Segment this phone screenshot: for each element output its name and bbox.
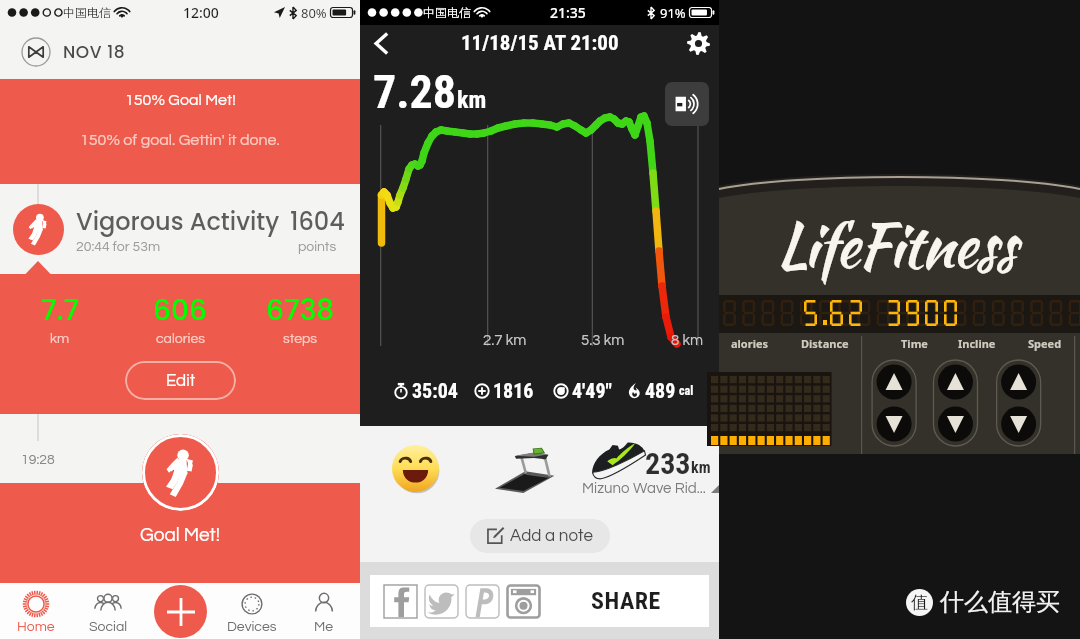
staticText: 8 km	[671, 333, 703, 348]
button[interactable]: Mood	[360, 426, 471, 510]
staticText: km	[691, 458, 711, 477]
staticText: Distance	[801, 336, 849, 351]
staticText: Home	[17, 620, 55, 634]
button[interactable]: Twitter	[424, 584, 459, 619]
button[interactable]: 233	[581, 426, 719, 510]
staticText: Mizuno Wave Rid...	[582, 481, 706, 496]
staticText: 1604	[290, 205, 345, 239]
button[interactable]: Audio cues	[665, 82, 709, 126]
staticText: 20:44 for 53m	[76, 240, 161, 254]
staticText: points	[298, 240, 337, 254]
staticText: SHARE	[591, 587, 661, 615]
button[interactable]: Home	[0, 583, 72, 639]
staticText: 中国电信	[423, 5, 471, 20]
staticText: km	[50, 332, 70, 346]
staticText: 35:04	[412, 379, 458, 402]
staticText: 中国电信	[63, 5, 111, 20]
staticText: 606	[153, 291, 207, 330]
staticText: Goal Met!	[140, 525, 220, 545]
staticText: Speed	[1028, 336, 1062, 351]
staticText: Social	[89, 620, 128, 634]
button[interactable]: Edit	[125, 361, 236, 400]
staticText: 21:35	[550, 3, 586, 22]
staticText: Vigorous Activity	[76, 205, 280, 239]
staticText: 150% Goal Met!	[125, 92, 236, 108]
staticText: 233	[645, 446, 691, 481]
staticText: alories	[731, 336, 769, 351]
staticText: 值	[911, 592, 928, 613]
staticText: 12:00	[183, 3, 219, 22]
button[interactable]: Activity type	[471, 426, 581, 510]
staticText: 150% of goal. Gettin' it done.	[80, 132, 280, 148]
staticText: steps	[283, 332, 318, 346]
button[interactable]: Settings	[677, 25, 719, 61]
staticText: Incline	[958, 336, 996, 351]
staticText: Add a note	[510, 527, 593, 545]
staticText: 5.3 km	[581, 333, 625, 348]
button[interactable]: SHARE	[591, 575, 709, 627]
staticText: 1816	[493, 379, 534, 402]
button[interactable]: Add activity	[154, 585, 207, 638]
button[interactable]: Devices	[216, 583, 288, 639]
staticText: 6738	[266, 291, 335, 330]
staticText: 19:28	[21, 453, 55, 467]
button[interactable]: Add a note	[470, 519, 610, 553]
staticText: Time	[901, 336, 928, 351]
button[interactable]: Pinterest	[465, 584, 500, 619]
button[interactable]: Back	[360, 25, 402, 61]
button[interactable]: Social	[72, 583, 144, 639]
staticText: 91%	[660, 4, 686, 22]
staticText: km	[457, 86, 487, 114]
staticText: 80%	[301, 4, 327, 22]
staticText: Me	[314, 620, 334, 634]
button[interactable]: Me	[288, 583, 360, 639]
button[interactable]: NOV 18	[0, 25, 360, 79]
staticText: 4'49"	[572, 379, 612, 402]
staticText: 什么值得买	[940, 587, 1060, 617]
staticText: NOV 18	[63, 40, 126, 64]
staticText: 489	[645, 379, 676, 402]
staticText: calories	[156, 332, 205, 346]
button[interactable]: Facebook	[383, 584, 418, 619]
staticText: 7.7	[41, 291, 80, 330]
staticText: 7.28	[373, 65, 457, 119]
button[interactable]: Instagram	[506, 584, 541, 619]
staticText: 2.7 km	[483, 333, 527, 348]
staticText: Devices	[227, 620, 277, 634]
button[interactable]: Vigorous Activity	[0, 184, 360, 274]
staticText: Edit	[166, 372, 196, 390]
staticText: cal	[679, 384, 694, 398]
staticText: LifeFitness	[777, 202, 1016, 289]
staticText: 11/18/15 AT 21:00	[461, 31, 619, 56]
